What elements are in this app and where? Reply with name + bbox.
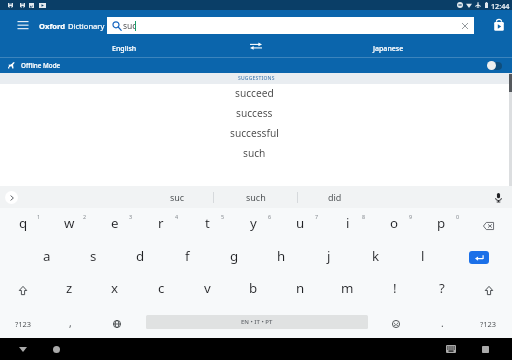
staticText: h <box>277 247 286 265</box>
staticText: 8 <box>362 213 366 220</box>
button[interactable]: successful <box>0 124 512 144</box>
staticText: EN • IT • PT <box>241 318 273 326</box>
button[interactable]: English <box>0 35 248 57</box>
staticText: s <box>90 247 97 265</box>
button[interactable]: m <box>324 273 371 306</box>
button[interactable]: Clear search <box>458 19 471 32</box>
staticText: succeed <box>235 86 274 100</box>
button[interactable]: ! <box>371 273 418 306</box>
button[interactable]: y <box>230 208 277 241</box>
button[interactable]: EN • IT • PT <box>146 315 368 329</box>
button[interactable]: Offline Mode <box>0 58 512 73</box>
staticText: b <box>249 279 258 297</box>
button[interactable]: w <box>46 208 92 241</box>
button[interactable]: Show more suggestions <box>5 191 18 204</box>
button[interactable]: j <box>305 241 352 274</box>
button[interactable]: succeed <box>0 84 512 104</box>
button[interactable]: z <box>46 273 92 306</box>
staticText: a <box>43 247 51 265</box>
button[interactable]: f <box>164 241 211 274</box>
button[interactable]: Shift <box>465 273 512 306</box>
button[interactable]: i <box>324 208 371 241</box>
button[interactable]: t <box>184 208 230 241</box>
button[interactable]: o <box>371 208 418 241</box>
button[interactable]: Japanese <box>264 35 512 57</box>
staticText: ? <box>439 279 445 297</box>
staticText: q <box>19 214 28 232</box>
staticText: w <box>64 214 75 232</box>
staticText: r <box>158 214 164 232</box>
button[interactable]: Shift <box>0 273 46 306</box>
button[interactable]: g <box>211 241 258 274</box>
staticText: such <box>243 146 266 160</box>
button[interactable]: e <box>92 208 138 241</box>
staticText: 7 <box>315 213 319 220</box>
button[interactable]: Change language <box>93 306 140 339</box>
staticText: g <box>230 247 239 265</box>
staticText: ! <box>393 279 397 297</box>
button[interactable]: Menu <box>12 14 34 36</box>
button[interactable]: . <box>419 306 466 339</box>
button[interactable]: r <box>138 208 184 241</box>
staticText: j <box>327 247 331 265</box>
staticText: . <box>441 316 444 330</box>
staticText: p <box>437 214 446 232</box>
button[interactable]: Backspace <box>465 208 512 241</box>
button[interactable]: Emoji <box>372 306 419 339</box>
staticText: z <box>66 279 73 297</box>
staticText: i <box>346 214 350 232</box>
button[interactable]: Open Play Store <box>488 14 510 36</box>
staticText: u <box>296 214 305 232</box>
button[interactable]: ?123 <box>0 306 47 339</box>
button[interactable]: Swap languages <box>244 35 268 57</box>
button[interactable]: l <box>399 241 446 274</box>
staticText: English <box>112 44 137 54</box>
button[interactable]: Home <box>46 339 66 359</box>
staticText: v <box>204 279 211 297</box>
staticText: did <box>328 191 342 203</box>
button[interactable]: suc <box>107 17 474 34</box>
staticText: y <box>250 214 257 232</box>
button[interactable]: Voice input <box>491 190 506 205</box>
staticText: o <box>390 214 399 232</box>
button[interactable]: suc <box>138 186 216 208</box>
staticText: SUGGESTIONS <box>238 75 275 82</box>
staticText: 9 <box>409 213 413 220</box>
staticText: 2 <box>83 213 87 220</box>
staticText: c <box>158 279 165 297</box>
button[interactable]: d <box>117 241 164 274</box>
button[interactable]: ? <box>418 273 465 306</box>
button[interactable]: Back <box>13 339 33 359</box>
staticText: suc <box>123 20 137 32</box>
button[interactable]: Recent apps <box>475 339 495 359</box>
staticText: ?123 <box>480 319 497 329</box>
staticText: suc <box>170 191 185 203</box>
button[interactable]: did <box>296 186 374 208</box>
button[interactable]: b <box>230 273 277 306</box>
button[interactable]: h <box>258 241 305 274</box>
staticText: 4 <box>175 213 179 220</box>
button[interactable]: such <box>217 186 295 208</box>
staticText: such <box>246 191 266 203</box>
staticText: k <box>372 247 380 265</box>
button[interactable]: q <box>0 208 46 241</box>
staticText: successful <box>230 126 279 140</box>
staticText: t <box>205 214 210 232</box>
button[interactable]: Enter <box>469 251 489 264</box>
button[interactable]: x <box>92 273 138 306</box>
button[interactable]: Change keyboard <box>441 339 461 359</box>
button[interactable]: p <box>418 208 465 241</box>
staticText: m <box>341 279 354 297</box>
button[interactable]: a <box>23 241 70 274</box>
button[interactable]: s <box>70 241 117 274</box>
button[interactable]: such <box>0 144 512 164</box>
button[interactable]: n <box>277 273 324 306</box>
staticText: 5 <box>221 213 225 220</box>
button[interactable]: c <box>138 273 184 306</box>
button[interactable]: k <box>352 241 399 274</box>
button[interactable]: v <box>184 273 230 306</box>
button[interactable]: , <box>47 306 94 339</box>
button[interactable]: ?123 <box>465 306 512 339</box>
button[interactable]: success <box>0 104 512 124</box>
button[interactable]: u <box>277 208 324 241</box>
